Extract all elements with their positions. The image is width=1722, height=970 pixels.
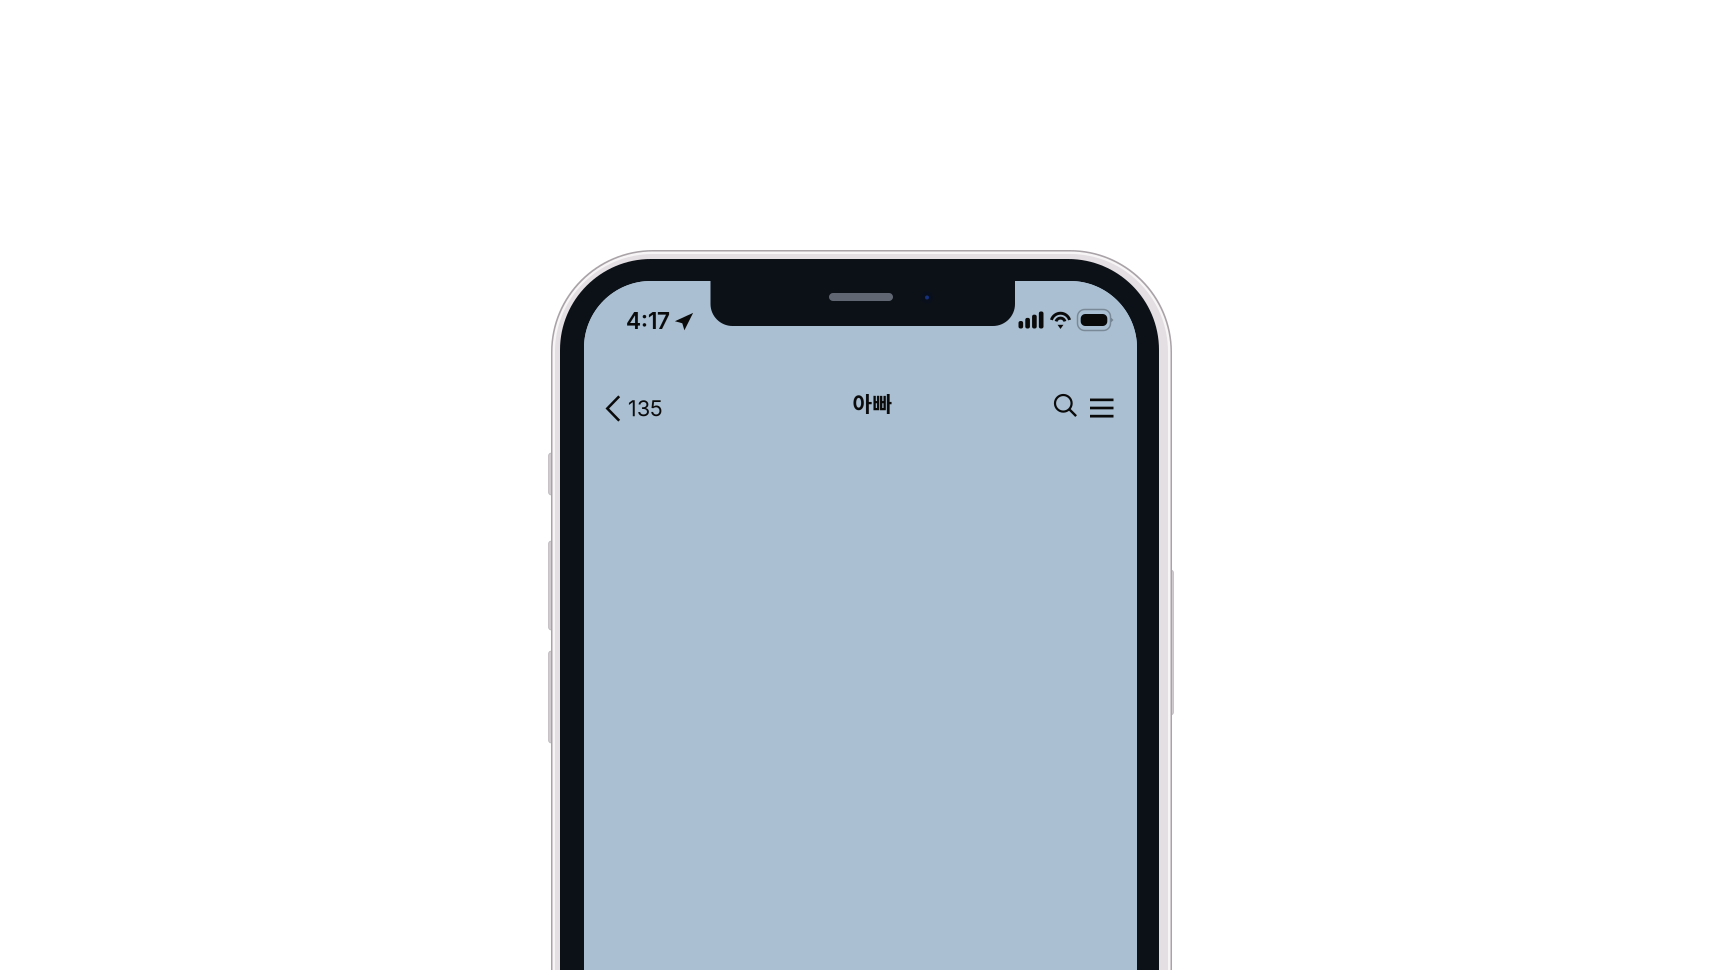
staticText: 4:17 [626, 307, 670, 334]
button[interactable]: Menu [1086, 392, 1117, 419]
button[interactable]: 135 [600, 389, 669, 428]
button[interactable]: Search [1051, 391, 1081, 421]
staticText: 135 [628, 396, 663, 421]
staticText: 아빠 [852, 388, 892, 418]
